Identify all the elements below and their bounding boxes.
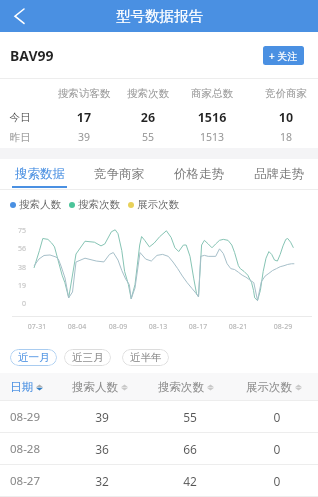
staticText: 商家总数 [172,87,252,100]
staticText: 近半年 [130,351,162,364]
button[interactable]: 日期 [10,380,43,394]
staticText: 08-09 [103,322,133,332]
button[interactable]: 近半年 [122,349,169,366]
staticText: 搜索次数 [78,198,120,211]
staticText: BAV99 [10,46,54,65]
button[interactable]: 品牌走势 [238,159,318,190]
staticText: + 关注 [269,49,298,63]
button[interactable]: Back [0,0,36,32]
staticText: 19 [8,281,26,291]
staticText: 08-13 [143,322,173,332]
staticText: 55 [170,409,210,425]
button[interactable]: 08-27 [0,465,318,497]
button[interactable]: 搜索数据 [0,159,79,190]
staticText: 搜索人数 [72,380,118,394]
staticText: 08-27 [10,473,41,489]
staticText: 75 [8,226,26,236]
staticText: 近三月 [72,351,104,364]
staticText: 08-29 [10,409,41,425]
staticText: 搜索次数 [108,87,188,100]
staticText: 竞价商家 [246,87,318,100]
staticText: 08-21 [223,322,253,332]
button[interactable]: 近一月 [10,349,57,366]
staticText: 0 [257,473,297,489]
staticText: 展示次数 [246,380,292,394]
staticText: 品牌走势 [254,166,304,182]
button[interactable]: 竞争商家 [79,159,158,190]
staticText: 搜索访客数 [44,87,124,100]
staticText: 型号数据报告 [116,7,203,25]
staticText: 38 [8,263,26,273]
staticText: 07-31 [22,322,52,332]
staticText: 66 [170,441,210,457]
staticText: 32 [82,473,122,489]
staticText: 搜索数据 [15,166,65,182]
staticText: 10 [246,109,318,126]
staticText: 搜索次数 [158,380,204,394]
button[interactable]: + 关注 [263,46,304,65]
staticText: 08-29 [268,322,298,332]
button[interactable]: 近三月 [64,349,111,366]
button[interactable]: 08-28 [0,433,318,465]
button[interactable]: 08-29 [0,401,318,433]
staticText: 39 [44,130,124,144]
staticText: 08-28 [10,441,41,457]
staticText: 搜索人数 [19,198,61,211]
button[interactable]: 展示次数 [246,380,302,394]
staticText: 竞争商家 [94,166,144,182]
staticText: 42 [170,473,210,489]
staticText: 展示次数 [137,198,179,211]
staticText: 18 [246,130,318,144]
staticText: 55 [108,130,188,144]
staticText: 昨日 [0,131,60,144]
staticText: 17 [44,109,124,126]
staticText: 今日 [0,111,60,124]
button[interactable]: 搜索次数 [158,380,214,394]
staticText: 39 [82,409,122,425]
staticText: 36 [82,441,122,457]
button[interactable]: 搜索人数 [72,380,128,394]
staticText: 1516 [172,109,252,126]
staticText: 1513 [172,130,252,144]
staticText: 08-17 [183,322,213,332]
staticText: 价格走势 [174,166,224,182]
staticText: 08-04 [62,322,92,332]
staticText: 0 [257,409,297,425]
staticText: 0 [8,299,26,309]
staticText: 日期 [10,380,33,394]
button[interactable]: 价格走势 [158,159,238,190]
staticText: 56 [8,244,26,254]
staticText: 26 [108,109,188,126]
staticText: 近一月 [18,351,50,364]
staticText: 0 [257,441,297,457]
